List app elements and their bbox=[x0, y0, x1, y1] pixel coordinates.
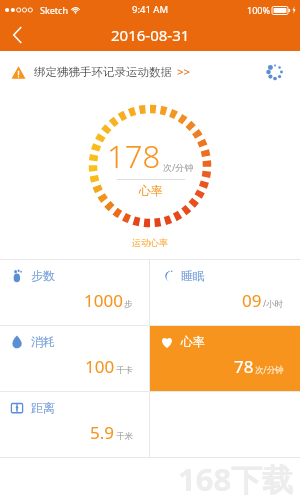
staticText: 5.9 bbox=[90, 421, 115, 444]
button[interactable]: 睡眠 bbox=[150, 260, 300, 325]
staticText: 心率 bbox=[181, 334, 205, 349]
staticText: 09 bbox=[242, 289, 262, 312]
staticText: >> bbox=[177, 64, 191, 80]
staticText: 千卡 bbox=[116, 365, 133, 376]
button[interactable]: 绑定狒狒手环记录运动数据 bbox=[0, 51, 300, 93]
staticText: 次/分钟 bbox=[255, 364, 284, 376]
button[interactable]: 步数 bbox=[0, 260, 149, 325]
button[interactable]: Loading bbox=[264, 61, 286, 83]
staticText: Sketch bbox=[40, 4, 68, 16]
staticText: 100 bbox=[85, 355, 115, 378]
staticText: 100% bbox=[247, 4, 270, 16]
staticText: 心率 bbox=[139, 183, 163, 198]
staticText: 绑定狒狒手环记录运动数据 bbox=[34, 65, 172, 79]
staticText: 9:41 AM bbox=[132, 3, 169, 16]
staticText: 78 bbox=[234, 355, 254, 378]
staticText: 168下载 bbox=[178, 458, 294, 496]
staticText: 步 bbox=[124, 299, 133, 310]
staticText: 2016-08-31 bbox=[111, 25, 190, 45]
staticText: 消耗 bbox=[31, 334, 55, 349]
staticText: 178 bbox=[107, 135, 161, 177]
staticText: 距离 bbox=[31, 400, 55, 415]
staticText: /小时 bbox=[263, 298, 284, 310]
staticText: 睡眠 bbox=[181, 268, 205, 283]
button[interactable]: 距离 bbox=[0, 392, 149, 457]
staticText: 步数 bbox=[31, 268, 55, 283]
staticText: 千米 bbox=[116, 431, 133, 442]
staticText: 运动心率 bbox=[0, 237, 300, 248]
button[interactable]: 消耗 bbox=[0, 326, 149, 391]
staticText: 次/分钟 bbox=[163, 161, 194, 173]
button[interactable]: 心率 bbox=[150, 326, 300, 391]
staticText: 1000 bbox=[84, 289, 123, 312]
button[interactable]: Back bbox=[0, 19, 34, 51]
